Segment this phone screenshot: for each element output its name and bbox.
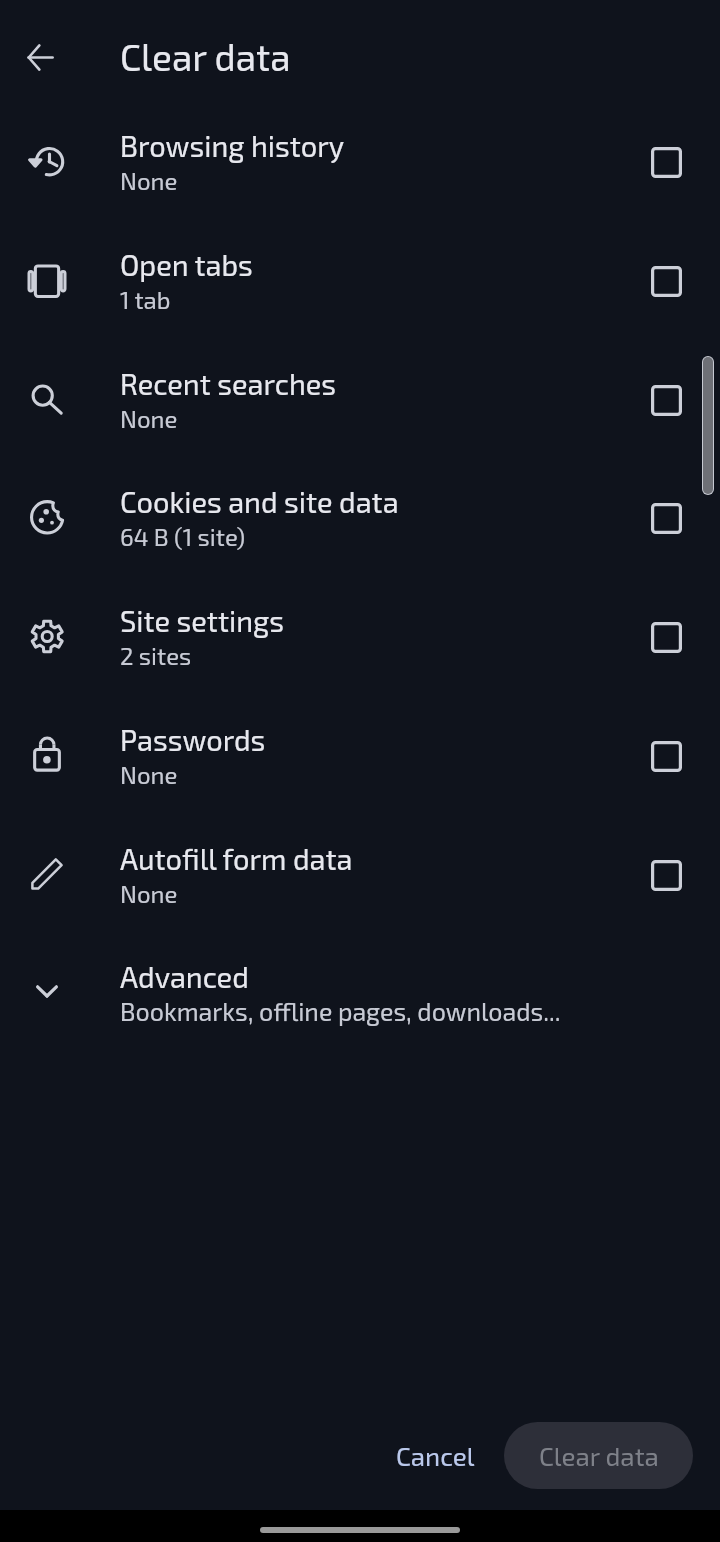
- button[interactable]: Navigate up: [3, 17, 83, 97]
- staticText: Browsing history: [120, 128, 345, 163]
- button[interactable]: Browsing history: [0, 113, 720, 232]
- staticText: Clear data: [120, 34, 291, 78]
- staticText: None: [120, 404, 178, 433]
- staticText: Site settings: [120, 603, 284, 638]
- button[interactable]: Select Autofill form data: [627, 836, 706, 915]
- button[interactable]: Select Browsing history: [627, 123, 706, 202]
- button[interactable]: Clear data: [504, 1422, 693, 1489]
- staticText: None: [120, 166, 178, 195]
- button[interactable]: Passwords: [0, 707, 720, 826]
- button[interactable]: Select Cookies and site data: [627, 479, 706, 558]
- staticText: 64 B (1 site): [120, 522, 246, 551]
- button[interactable]: Autofill form data: [0, 826, 720, 945]
- button[interactable]: Cancel: [376, 1422, 494, 1489]
- staticText: None: [120, 879, 178, 908]
- button[interactable]: Site settings: [0, 588, 720, 707]
- button[interactable]: Select Passwords: [627, 717, 706, 796]
- staticText: Autofill form data: [120, 841, 353, 876]
- staticText: Clear data: [539, 1440, 659, 1471]
- staticText: Cookies and site data: [120, 484, 399, 519]
- staticText: Open tabs: [120, 247, 253, 282]
- staticText: 1 tab: [120, 285, 171, 314]
- staticText: Advanced: [120, 959, 249, 994]
- staticText: Recent searches: [120, 366, 337, 401]
- button[interactable]: Cookies and site data: [0, 469, 720, 588]
- staticText: 2 sites: [120, 641, 192, 670]
- button[interactable]: Recent searches: [0, 351, 720, 470]
- button[interactable]: Select Site settings: [627, 598, 706, 677]
- button[interactable]: Open tabs: [0, 232, 720, 351]
- staticText: None: [120, 760, 178, 789]
- button[interactable]: Select Open tabs: [627, 242, 706, 321]
- staticText: Passwords: [120, 722, 266, 757]
- button[interactable]: Advanced: [0, 945, 720, 1064]
- staticText: Bookmarks, offline pages, downloads...: [120, 996, 561, 1026]
- staticText: Cancel: [396, 1440, 475, 1471]
- button[interactable]: Select Recent searches: [627, 361, 706, 440]
